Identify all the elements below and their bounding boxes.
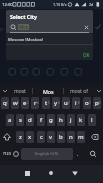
- staticText: Mos: [19, 24, 28, 30]
- staticText: 6: [58, 101, 60, 105]
- staticText: 3: [27, 101, 29, 105]
- staticText: v: [49, 133, 53, 141]
- button[interactable]: most of: [66, 86, 92, 96]
- staticText: i: [75, 99, 77, 107]
- staticText: g: [49, 116, 53, 124]
- staticText: t: [45, 99, 48, 107]
- button[interactable]: [84, 25, 89, 30]
- staticText: OK: [83, 52, 90, 58]
- staticText: s: [19, 116, 22, 124]
- staticText: 1.13 K/s: [53, 2, 67, 7]
- staticText: most of: [70, 88, 88, 95]
- button[interactable]: t: [42, 97, 50, 109]
- staticText: r: [34, 99, 37, 107]
- staticText: u: [64, 99, 68, 107]
- button[interactable]: y: [52, 97, 60, 109]
- staticText: 7: [68, 101, 70, 105]
- button[interactable]: a: [6, 114, 14, 126]
- button[interactable]: .: [74, 149, 82, 158]
- button[interactable]: h: [57, 114, 65, 126]
- staticText: 12:00: [2, 2, 13, 8]
- staticText: m: [78, 133, 84, 141]
- staticText: Select City: [10, 13, 37, 20]
- staticText: most: [14, 88, 26, 95]
- button[interactable]: k: [77, 114, 85, 126]
- staticText: c: [40, 133, 43, 141]
- button[interactable]: m: [77, 131, 85, 143]
- button[interactable]: OK: [81, 51, 92, 59]
- button[interactable]: Mos: [36, 86, 60, 96]
- staticText: n: [69, 133, 73, 141]
- button[interactable]: English (US): [21, 148, 73, 160]
- button[interactable]: c: [37, 131, 45, 143]
- staticText: p: [95, 99, 99, 107]
- staticText: x: [28, 133, 32, 141]
- button[interactable]: [71, 170, 79, 177]
- staticText: l: [91, 116, 93, 124]
- staticText: o: [85, 99, 89, 107]
- staticText: d: [28, 116, 32, 124]
- button[interactable]: ?123: [1, 149, 12, 158]
- staticText: Moscow (Moskva): [8, 37, 43, 43]
- button[interactable]: g: [47, 114, 55, 126]
- button[interactable]: [1, 88, 9, 94]
- staticText: 4: [37, 101, 39, 105]
- button[interactable]: e: [21, 97, 29, 109]
- button[interactable]: Mos: [18, 24, 29, 30]
- button[interactable]: b: [57, 131, 65, 143]
- staticText: e: [23, 99, 27, 107]
- staticText: h: [59, 116, 63, 124]
- button[interactable]: [88, 132, 100, 142]
- staticText: ?123: [3, 151, 11, 156]
- button[interactable]: Moscow (Moskva): [8, 35, 68, 44]
- staticText: z: [19, 133, 22, 141]
- staticText: 5: [48, 101, 50, 105]
- button[interactable]: z: [16, 131, 24, 143]
- button[interactable]: n: [67, 131, 75, 143]
- button[interactable]: d: [26, 114, 34, 126]
- staticText: Mos: [43, 88, 54, 95]
- button[interactable]: [2, 132, 12, 142]
- staticText: 2d: [89, 2, 94, 7]
- button[interactable]: l: [88, 114, 96, 126]
- staticText: M: [0, 27, 4, 32]
- button[interactable]: v: [47, 131, 55, 143]
- button[interactable]: [48, 170, 54, 176]
- button[interactable]: w: [11, 97, 19, 109]
- button[interactable]: most: [10, 86, 30, 96]
- staticText: w: [13, 99, 18, 107]
- staticText: q: [3, 99, 7, 107]
- button[interactable]: [13, 151, 19, 157]
- staticText: 0: [99, 101, 101, 105]
- staticText: j: [70, 116, 72, 124]
- button[interactable]: u: [62, 97, 70, 109]
- button[interactable]: j: [67, 114, 75, 126]
- button[interactable]: x: [26, 131, 34, 143]
- button[interactable]: p: [93, 97, 101, 109]
- button[interactable]: i: [72, 97, 80, 109]
- staticText: y: [54, 99, 58, 107]
- button[interactable]: o: [83, 97, 91, 109]
- staticText: f: [40, 116, 43, 124]
- staticText: English (US): [35, 151, 59, 157]
- staticText: 2: [17, 101, 19, 105]
- staticText: a: [8, 116, 12, 124]
- button[interactable]: r: [31, 97, 39, 109]
- staticText: 9: [89, 101, 91, 105]
- button[interactable]: q: [1, 97, 9, 109]
- staticText: b: [59, 133, 63, 141]
- staticText: 8: [78, 101, 80, 105]
- button[interactable]: [89, 150, 98, 159]
- staticText: k: [79, 116, 83, 124]
- staticText: 1: [7, 101, 9, 105]
- button[interactable]: s: [16, 114, 24, 126]
- staticText: .: [77, 150, 79, 157]
- button[interactable]: [95, 88, 102, 94]
- button[interactable]: f: [37, 114, 45, 126]
